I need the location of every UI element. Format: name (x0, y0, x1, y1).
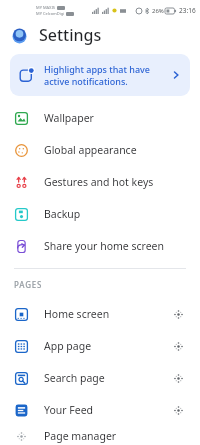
button[interactable]: Reorder App page (170, 338, 186, 354)
button[interactable]: Global appearance (0, 134, 200, 166)
button[interactable]: App page (0, 330, 200, 362)
button[interactable]: Share your home screen (0, 230, 200, 262)
staticText: MY MAXIS (36, 5, 56, 10)
button[interactable]: Reorder Search page (170, 370, 186, 386)
staticText: Wallpaper (44, 111, 94, 125)
button[interactable]: Backup (0, 198, 200, 230)
staticText: Share your home screen (44, 239, 165, 253)
button[interactable]: Wallpaper (0, 102, 200, 134)
staticText: Page manager (44, 429, 117, 443)
staticText: MY CelcomDigi (36, 11, 65, 16)
staticText: Backup (44, 207, 81, 221)
staticText: 23:16 (179, 6, 196, 15)
staticText: Home screen (44, 307, 170, 321)
button[interactable]: Highlight apps that have active notifica… (10, 54, 190, 96)
button[interactable]: Reorder Your Feed (170, 402, 186, 418)
button[interactable]: Home screen (0, 298, 200, 330)
staticText: 26% (152, 7, 164, 15)
button[interactable]: Reorder Home screen (170, 306, 186, 322)
button[interactable]: Your Feed (0, 394, 200, 426)
staticText: Your Feed (44, 403, 170, 417)
staticText: Global appearance (44, 143, 137, 157)
button[interactable]: Search page (0, 362, 200, 394)
staticText: Settings (39, 24, 102, 46)
staticText: Highlight apps that have active notifica… (44, 63, 165, 87)
button[interactable]: Gestures and hot keys (0, 166, 200, 198)
staticText: Search page (44, 371, 170, 385)
staticText: App page (44, 339, 170, 353)
staticText: PAGES (14, 279, 43, 290)
staticText: Gestures and hot keys (44, 175, 154, 189)
button[interactable]: Page manager (0, 426, 200, 445)
